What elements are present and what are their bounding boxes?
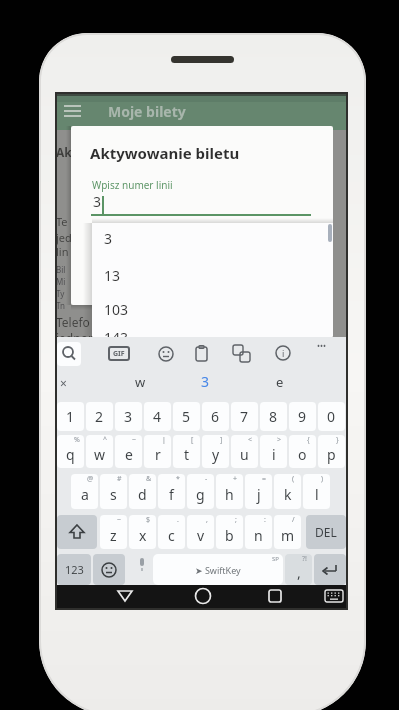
staticText: x [139,526,147,545]
button[interactable]: ^ [86,435,113,468]
button[interactable] [267,588,283,604]
staticText: 2 [95,407,104,426]
staticText: 3 [93,192,102,211]
button[interactable]: 0 [318,402,345,431]
button[interactable] [324,589,344,603]
button[interactable]: # [100,474,127,509]
staticText: Aktywowanie biletu [90,143,240,163]
button[interactable]: 2 [86,402,113,431]
staticText: n [254,526,263,545]
button[interactable]: 7 [231,402,258,431]
staticText: ^ [103,435,108,445]
staticText: t [184,445,190,464]
staticText: 6 [211,407,220,426]
button[interactable]: 1 [57,402,84,431]
button[interactable]: 9 [289,402,316,431]
button[interactable]: ; [216,515,243,549]
button[interactable]: [ [173,435,200,468]
staticText: [ [191,435,194,445]
button[interactable] [314,554,346,585]
button[interactable]: 6 [202,402,229,431]
button[interactable]: , [187,515,214,549]
staticText: b [225,526,234,545]
staticText: ~ [117,515,122,525]
staticText: a [81,485,89,504]
button[interactable] [57,515,97,549]
button[interactable]: & [129,474,156,509]
staticText: u [240,445,249,464]
button[interactable]: % [57,435,84,468]
button[interactable]: < [231,435,258,468]
button[interactable]: = [245,474,272,509]
staticText: 3 [124,407,133,426]
staticText: e [276,373,284,391]
staticText: j [257,485,261,504]
staticText: 0 [327,407,336,426]
staticText: o [298,445,307,464]
staticText: Bil [56,264,66,275]
staticText: 143 [104,328,129,347]
button[interactable]: * [158,474,185,509]
button[interactable]: : [245,515,272,549]
staticText: 3 [201,372,210,391]
staticText: y [212,445,220,464]
button[interactable] [64,105,82,119]
button[interactable]: ~ [100,515,127,549]
button[interactable]: } [318,435,345,468]
button[interactable]: GIF [108,346,130,361]
button[interactable]: / [274,515,301,549]
staticText: i [282,347,285,359]
button[interactable]: 3 [115,402,142,431]
staticText: k [284,485,292,504]
button[interactable]: i [275,345,291,361]
staticText: + [233,474,238,484]
button[interactable]: > [260,435,287,468]
staticText: jednor [56,330,93,346]
staticText: ➤ SwiftKey [195,564,241,576]
staticText: × [60,375,67,391]
staticText: 5 [182,407,191,426]
staticText: { [307,435,310,445]
button[interactable]: - [187,474,214,509]
staticText: | [162,435,166,445]
staticText: Tn [56,300,65,311]
button[interactable]: ~ [115,435,142,468]
staticText: 4 [153,407,162,426]
button[interactable]: + [216,474,243,509]
staticText: DEL [315,524,337,540]
staticText: Te [56,214,68,229]
staticText: ( [292,474,295,484]
staticText: SP [272,555,279,563]
button[interactable]: @ [71,474,98,509]
staticText: , [206,515,208,525]
button[interactable]: . [158,515,185,549]
button[interactable]: | [144,435,171,468]
button[interactable]: ) [303,474,330,509]
button[interactable]: 4 [144,402,171,431]
button[interactable]: { [289,435,316,468]
staticText: ) [321,474,324,484]
staticText: > [277,435,282,445]
button[interactable]: DEL [306,515,346,549]
staticText: 13 [104,266,121,285]
staticText: i [272,445,276,464]
staticText: < [248,435,253,445]
button[interactable] [93,554,125,585]
button[interactable]: 5 [173,402,200,431]
button[interactable] [194,587,212,605]
staticText: Mi [56,276,66,287]
button[interactable]: 123 [57,554,91,585]
button[interactable]: ( [274,474,301,509]
staticText: lin [56,244,69,259]
button[interactable]: ?! [285,554,312,585]
button[interactable]: ] [202,435,229,468]
button[interactable]: $ [129,515,156,549]
staticText: * [176,474,180,484]
staticText: d [138,485,147,504]
button[interactable] [116,588,134,604]
staticText: Moje bilety [108,102,186,121]
button[interactable]: 8 [260,402,287,431]
button[interactable]: ➤ SwiftKey [153,554,283,585]
staticText: GIF [113,349,125,359]
staticText: 8 [269,407,278,426]
